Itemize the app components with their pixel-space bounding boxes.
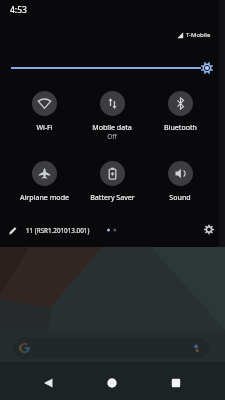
- button[interactable]: [97, 158, 127, 188]
- button[interactable]: [102, 373, 122, 393]
- staticText: Battery Saver: [90, 192, 135, 202]
- button[interactable]: [13, 337, 209, 359]
- button[interactable]: [0, 58, 225, 78]
- staticText: Off: [107, 132, 117, 141]
- button[interactable]: [166, 373, 186, 393]
- staticText: Bluetooth: [164, 122, 197, 132]
- staticText: T-Mobile: [186, 31, 211, 39]
- button[interactable]: [97, 88, 127, 118]
- button[interactable]: [38, 373, 58, 393]
- staticText: Wi-Fi: [36, 122, 53, 132]
- staticText: Mobile data: [92, 122, 132, 132]
- staticText: 4:53: [10, 4, 27, 16]
- button[interactable]: [29, 88, 59, 118]
- button[interactable]: [165, 88, 195, 118]
- button[interactable]: [5, 221, 22, 238]
- button[interactable]: [200, 221, 218, 239]
- staticText: Airplane mode: [20, 192, 69, 202]
- button[interactable]: [29, 158, 59, 188]
- staticText: Sound: [169, 192, 191, 202]
- staticText: 11 (RSR1.201013.001): [26, 226, 90, 235]
- button[interactable]: [165, 158, 195, 188]
